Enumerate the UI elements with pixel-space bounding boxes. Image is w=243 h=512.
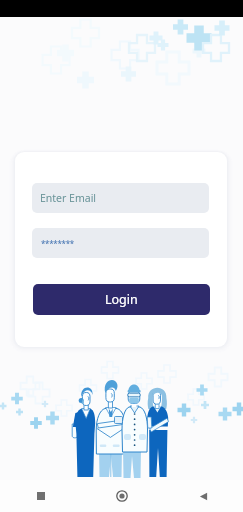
button[interactable]: Recents	[29, 484, 53, 508]
button[interactable]: Login	[33, 284, 210, 315]
button[interactable]: ********	[32, 228, 209, 258]
button[interactable]: Enter Email	[32, 183, 209, 213]
button[interactable]: Back	[191, 484, 215, 508]
button[interactable]: Home	[110, 484, 134, 508]
staticText: Login	[105, 291, 138, 308]
staticText: ********	[41, 238, 74, 249]
staticText: Enter Email	[40, 191, 97, 205]
